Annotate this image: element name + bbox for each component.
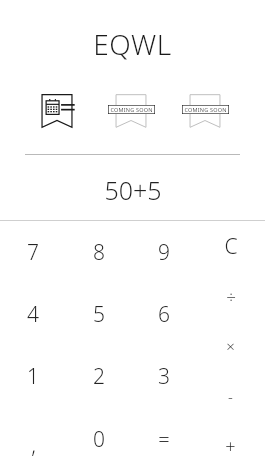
staticText: ÷: [226, 285, 236, 308]
staticText: 1: [27, 362, 39, 391]
staticText: 6: [158, 300, 170, 329]
staticText: 5: [93, 300, 105, 329]
button[interactable]: 1: [0, 345, 66, 408]
staticText: 7: [27, 238, 39, 267]
staticText: COMING SOON: [110, 106, 153, 113]
staticText: 4: [27, 300, 39, 329]
button[interactable]: Calendar list shortcut: [37, 91, 77, 131]
button[interactable]: 9: [131, 221, 196, 283]
staticText: 3: [158, 362, 170, 391]
staticText: -: [228, 386, 233, 406]
button[interactable]: 7: [0, 221, 66, 283]
staticText: EQWL: [93, 25, 172, 63]
button[interactable]: -: [196, 371, 265, 421]
button[interactable]: 0: [66, 408, 131, 471]
button[interactable]: 2: [66, 345, 131, 408]
button[interactable]: C: [196, 221, 265, 271]
staticText: 8: [93, 238, 105, 267]
button[interactable]: ÷: [196, 271, 265, 321]
button[interactable]: 5: [66, 283, 131, 345]
staticText: =: [158, 426, 170, 453]
button[interactable]: ×: [196, 321, 265, 371]
staticText: ×: [226, 336, 235, 356]
button[interactable]: 6: [131, 283, 196, 345]
button[interactable]: Coming soon shortcut 1: [102, 91, 160, 131]
button[interactable]: 4: [0, 283, 66, 345]
staticText: +: [225, 434, 236, 459]
button[interactable]: Coming soon shortcut 2: [176, 91, 234, 131]
button[interactable]: ,: [0, 408, 66, 471]
staticText: 9: [158, 238, 170, 267]
button[interactable]: 3: [131, 345, 196, 408]
button[interactable]: +: [196, 421, 265, 471]
staticText: ,: [31, 431, 36, 460]
staticText: 2: [93, 362, 105, 391]
staticText: 0: [93, 425, 105, 454]
button[interactable]: =: [131, 408, 196, 471]
button[interactable]: 8: [66, 221, 131, 283]
staticText: 50+5: [104, 173, 162, 207]
staticText: C: [224, 232, 238, 261]
staticText: COMING SOON: [184, 106, 227, 113]
